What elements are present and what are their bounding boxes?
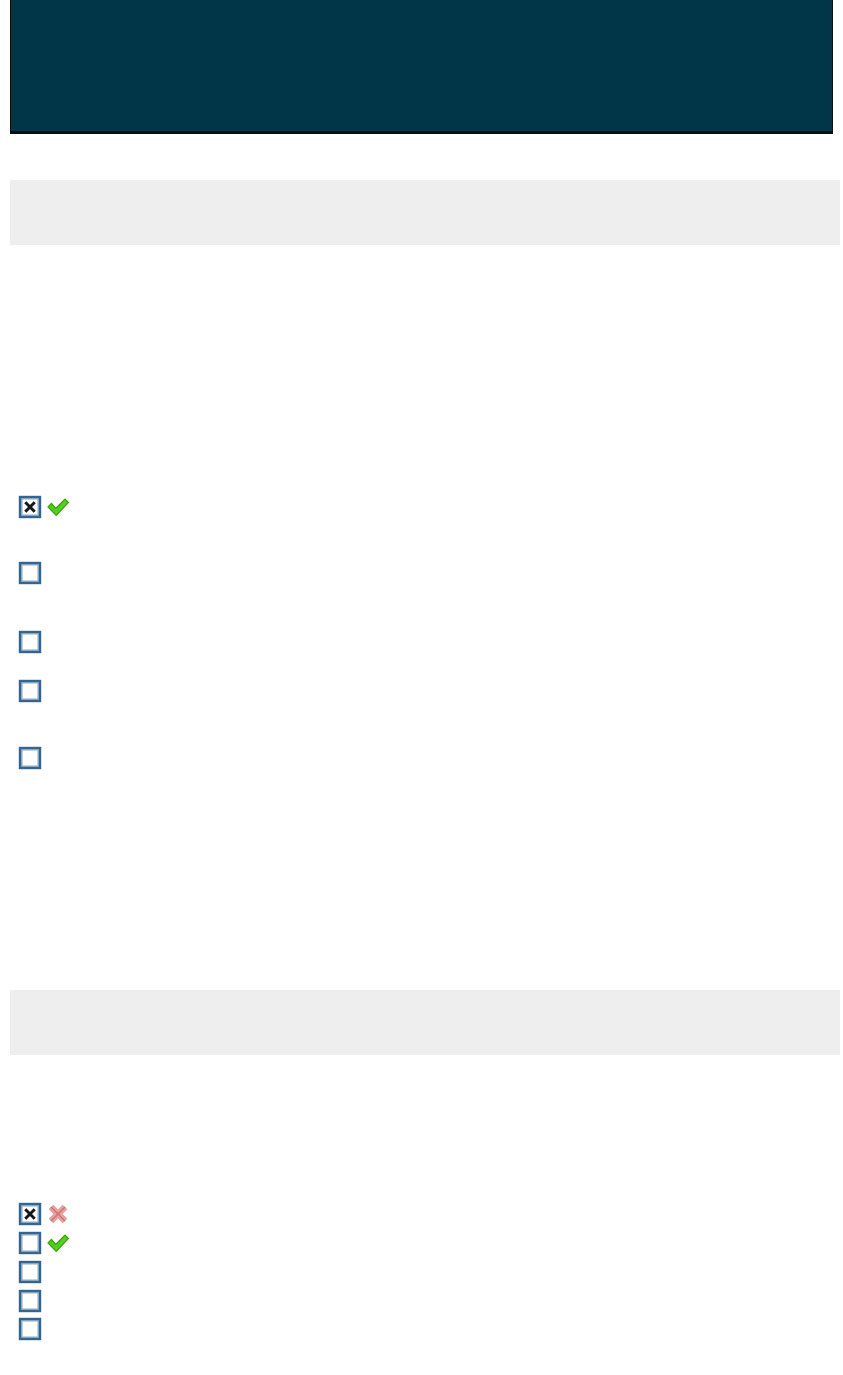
button[interactable]: Selected answer checkbox	[19, 496, 41, 518]
button[interactable]: Selected answer checkbox	[19, 1203, 41, 1225]
button[interactable]: Answer checkbox	[19, 1290, 41, 1312]
button[interactable]: Answer checkbox	[19, 747, 41, 769]
other: Incorrect answer	[47, 1203, 69, 1225]
other: Correct answer	[47, 1232, 69, 1254]
button[interactable]: Answer checkbox	[19, 1261, 41, 1283]
button[interactable]: Answer checkbox	[19, 562, 41, 584]
button[interactable]: Answer checkbox	[19, 1232, 41, 1254]
button[interactable]: Header banner	[10, 0, 833, 134]
other: Correct answer	[47, 496, 69, 518]
button[interactable]: Answer checkbox	[19, 1318, 41, 1340]
button[interactable]: Answer checkbox	[19, 631, 41, 653]
button[interactable]: Answer checkbox	[19, 680, 41, 702]
